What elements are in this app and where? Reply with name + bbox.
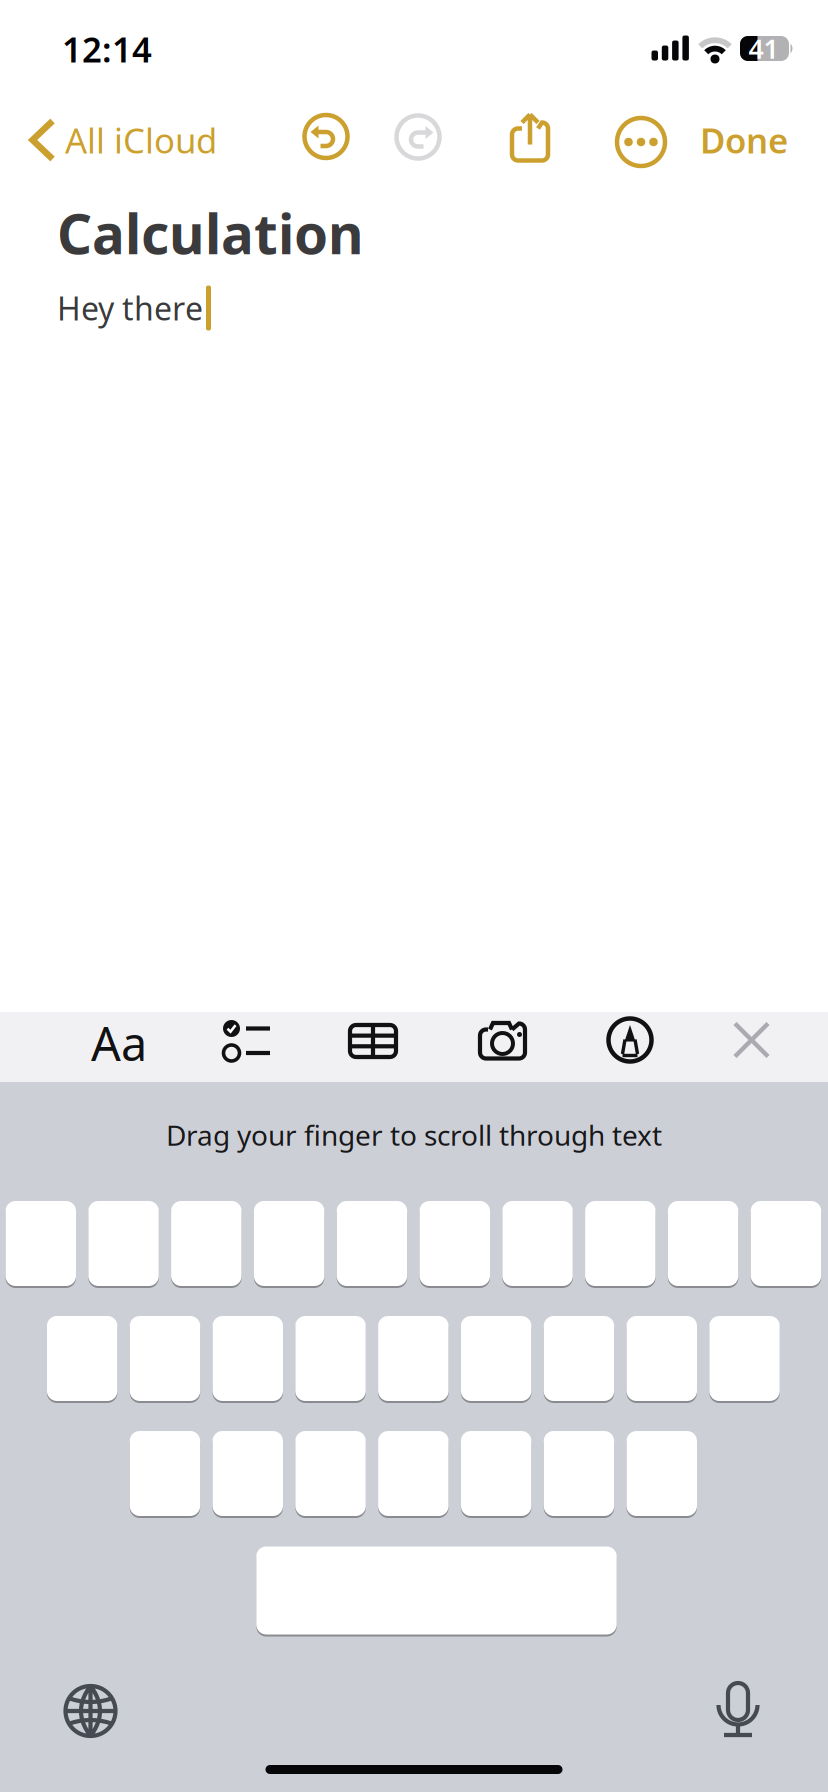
staticText: Calculation [57, 197, 364, 269]
staticText: 12:14 [62, 26, 152, 72]
button[interactable]: Key [130, 1431, 200, 1518]
button[interactable]: Redo [396, 115, 440, 159]
staticText: 41 [748, 31, 778, 66]
button[interactable]: Share [506, 112, 554, 168]
button[interactable]: Table [348, 1023, 398, 1059]
button[interactable]: Key [212, 1431, 283, 1518]
button[interactable]: Key [668, 1201, 738, 1288]
button[interactable]: All iCloud [28, 112, 288, 168]
staticText: Hey there [57, 287, 203, 329]
button[interactable]: Key [378, 1316, 449, 1403]
button[interactable]: Undo [304, 114, 348, 158]
button[interactable]: Done [648, 117, 788, 163]
button[interactable]: Key [544, 1431, 614, 1518]
button[interactable]: Key [461, 1316, 531, 1403]
staticText: Drag your finger to scroll through text [166, 1116, 662, 1154]
button[interactable]: Next keyboard [63, 1684, 117, 1738]
button[interactable]: Key [544, 1316, 614, 1403]
button[interactable]: Checklist [222, 1019, 271, 1061]
button[interactable]: More [615, 116, 666, 167]
staticText: Done [700, 117, 788, 163]
button[interactable]: Dictate [714, 1681, 762, 1738]
button[interactable]: Key [254, 1201, 324, 1288]
button[interactable]: Key [130, 1316, 200, 1403]
button[interactable]: Close [734, 1022, 769, 1057]
staticText: Aa [91, 1012, 147, 1074]
button[interactable]: Key [295, 1431, 366, 1518]
button[interactable]: Space [256, 1546, 617, 1636]
button[interactable]: Camera [478, 1021, 527, 1059]
button[interactable]: Key [626, 1316, 697, 1403]
button[interactable]: Format [91, 1012, 147, 1074]
button[interactable]: Key [171, 1201, 242, 1288]
button[interactable]: Key [585, 1201, 656, 1288]
button[interactable]: Key [212, 1316, 283, 1403]
button[interactable]: Key [709, 1316, 780, 1403]
button[interactable]: Key [295, 1316, 366, 1403]
button[interactable]: Key [47, 1316, 117, 1403]
button[interactable]: Key [378, 1431, 449, 1518]
button[interactable]: Key [88, 1201, 159, 1288]
button[interactable]: Key [751, 1201, 821, 1288]
button[interactable]: Key [626, 1431, 697, 1518]
button[interactable]: Markup [608, 1018, 651, 1061]
button[interactable]: Key [502, 1201, 573, 1288]
staticText: All iCloud [65, 117, 217, 163]
button[interactable]: Key [419, 1201, 490, 1288]
button[interactable]: Key [461, 1431, 531, 1518]
button[interactable]: Key [337, 1201, 407, 1288]
button[interactable]: Key [5, 1201, 76, 1288]
